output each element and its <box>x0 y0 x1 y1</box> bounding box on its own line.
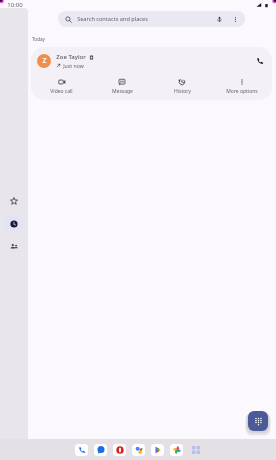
button[interactable]: Play Store <box>151 444 164 456</box>
staticText: Search contacts and places <box>77 15 148 23</box>
button[interactable]: Photos <box>170 444 183 456</box>
staticText: Today <box>32 36 45 42</box>
button[interactable]: Contacts <box>0 235 28 258</box>
button[interactable]: Search contacts and places <box>58 11 245 27</box>
button[interactable]: Phone <box>75 444 88 456</box>
button[interactable]: Recents <box>0 212 28 235</box>
staticText: Video call <box>50 88 73 95</box>
button[interactable]: Video call <box>31 75 92 95</box>
button[interactable]: Open dialpad <box>248 411 268 431</box>
button[interactable]: More options <box>212 75 272 95</box>
staticText: More options <box>226 88 258 95</box>
button[interactable]: Call Zoe Taylor <box>253 54 267 68</box>
button[interactable]: Opera <box>113 444 126 456</box>
button[interactable]: Assistant <box>132 444 145 456</box>
staticText: Z <box>42 56 47 66</box>
button[interactable]: Z <box>31 47 272 75</box>
staticText: History <box>174 88 191 95</box>
button[interactable]: Favourites <box>0 189 28 212</box>
staticText: 10:00 <box>7 1 23 9</box>
staticText: Message <box>112 88 133 95</box>
staticText: Just now <box>63 62 84 69</box>
button[interactable]: All apps <box>189 444 202 456</box>
button[interactable]: Messages <box>94 444 107 456</box>
button[interactable]: History <box>152 75 212 95</box>
button[interactable]: Message <box>92 75 152 95</box>
staticText: Zoe Taylor <box>56 53 86 61</box>
